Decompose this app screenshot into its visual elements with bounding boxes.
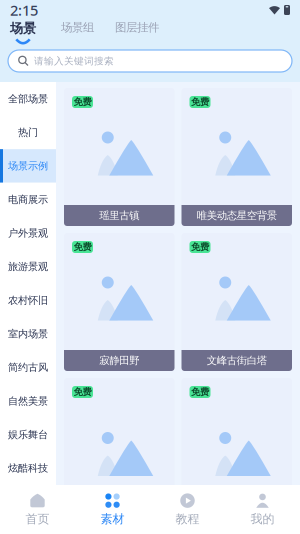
button[interactable]: 教程 [150, 485, 225, 534]
staticText: 寂静田野 [99, 354, 139, 367]
staticText: 免费 [73, 241, 91, 253]
staticText: 自然美景 [8, 395, 48, 407]
button[interactable]: 室内场景 [0, 317, 56, 351]
staticText: 免费 [191, 241, 209, 253]
button[interactable]: 免费 [64, 88, 174, 226]
staticText: 农村怀旧 [8, 294, 48, 307]
staticText: 2:15 [10, 0, 38, 20]
staticText: 电商展示 [8, 193, 48, 206]
button[interactable]: 场景 [10, 20, 36, 44]
staticText: 图层挂件 [115, 20, 159, 35]
button[interactable]: 自然美景 [0, 384, 56, 418]
button[interactable]: 免费 [181, 88, 292, 226]
button[interactable]: 旅游景观 [0, 250, 56, 283]
staticText: 唯美动态星空背景 [197, 209, 277, 222]
staticText: 教程 [175, 512, 199, 526]
staticText: 热门 [18, 126, 38, 139]
button[interactable]: 免费 [64, 233, 174, 371]
staticText: 请输入关键词搜索 [34, 55, 114, 67]
staticText: 炫酷科技 [8, 462, 48, 475]
staticText: 户外景观 [8, 227, 48, 239]
staticText: 室内场景 [8, 327, 48, 340]
button[interactable]: 免费 [181, 233, 292, 371]
button[interactable]: 场景组 [36, 20, 94, 35]
staticText: 免费 [73, 96, 91, 108]
staticText: 场景示例 [8, 160, 48, 172]
button[interactable]: 我的 [225, 485, 300, 534]
button[interactable]: 热门 [0, 116, 56, 149]
button[interactable]: 娱乐舞台 [0, 418, 56, 451]
staticText: 全部场景 [8, 92, 48, 105]
staticText: 场景组 [61, 20, 94, 35]
button[interactable]: 场景 [181, 378, 292, 516]
staticText: 免费 [191, 386, 209, 398]
button[interactable]: 农村怀旧 [0, 283, 56, 317]
button[interactable]: 场景 [64, 378, 174, 516]
button[interactable]: 户外景观 [0, 216, 56, 250]
staticText: 免费 [191, 96, 209, 108]
button[interactable]: 场景示例 [0, 149, 56, 183]
button[interactable]: 首页 [0, 485, 75, 534]
button[interactable]: 简约古风 [0, 351, 56, 384]
button[interactable]: 素材 [75, 485, 150, 534]
staticText: 首页 [25, 512, 49, 526]
staticText: 免费 [73, 386, 91, 398]
button[interactable]: 电商展示 [0, 183, 56, 216]
button[interactable]: 全部场景 [0, 82, 56, 116]
staticText: 场景 [10, 20, 36, 37]
staticText: 旅游景观 [8, 260, 48, 273]
staticText: 素材 [100, 512, 124, 526]
staticText: 瑶里古镇 [99, 209, 139, 222]
staticText: 我的 [250, 512, 274, 526]
staticText: 文峰古街白塔 [207, 354, 267, 367]
staticText: 简约古风 [8, 361, 48, 374]
button[interactable]: 图层挂件 [94, 20, 159, 35]
button[interactable]: 炫酷科技 [0, 451, 56, 485]
staticText: 娱乐舞台 [8, 428, 48, 441]
